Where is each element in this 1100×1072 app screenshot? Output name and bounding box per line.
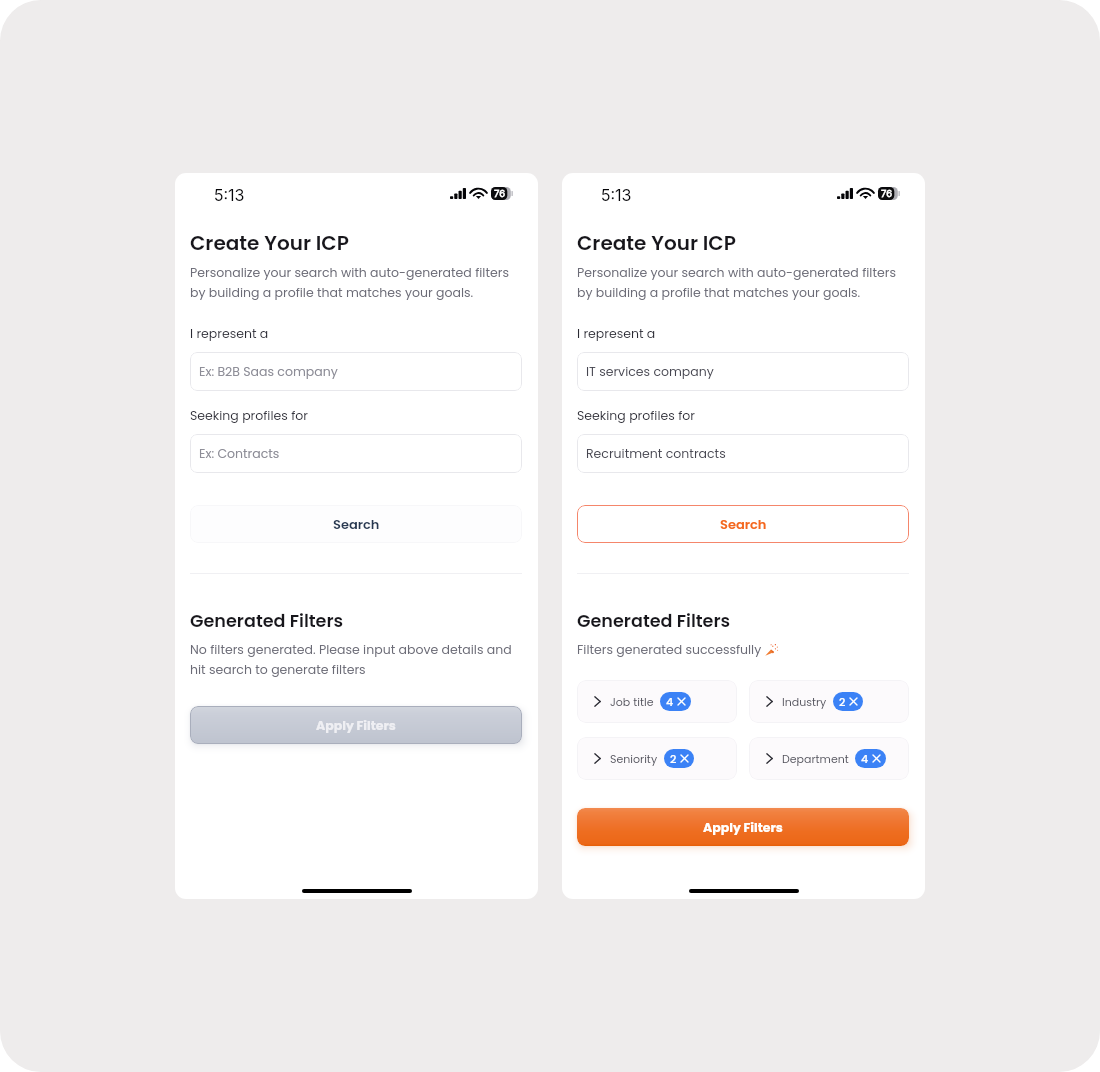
staticText: Industry (782, 694, 827, 709)
other: Clear Job title filter (678, 698, 685, 705)
staticText: Recruitment contracts (586, 445, 726, 462)
staticText: Generated Filters (577, 609, 731, 634)
button[interactable]: Apply Filters (190, 706, 522, 744)
button[interactable]: IT services company (577, 352, 909, 391)
staticText: Filters generated successfully (577, 641, 765, 658)
staticText: No filters generated. Please input above… (190, 641, 520, 678)
other: Clear Seniority filter (681, 755, 688, 762)
staticText: Seeking profiles for (577, 407, 695, 424)
staticText: Apply Filters (703, 819, 783, 836)
staticText: 4 (861, 751, 869, 766)
staticText: Department (782, 751, 849, 766)
staticText: Personalize your search with auto-genera… (577, 264, 902, 301)
button[interactable]: Search (577, 505, 909, 543)
button[interactable]: Seniority (577, 737, 737, 780)
staticText: 5:13 (214, 185, 245, 204)
staticText: Apply Filters (316, 717, 396, 734)
button[interactable]: Department (749, 737, 909, 780)
button[interactable]: Job title (577, 680, 737, 723)
staticText: Job title (610, 694, 654, 709)
staticText: 76 (494, 188, 506, 199)
button[interactable]: Apply Filters (577, 808, 909, 846)
other: Clear Industry filter (850, 698, 857, 705)
button[interactable]: Recruitment contracts (577, 434, 909, 473)
button[interactable]: Ex: Contracts (190, 434, 522, 473)
staticText: IT services company (586, 363, 714, 380)
staticText: 2 (839, 694, 846, 709)
button[interactable]: Search (190, 505, 522, 543)
staticText: Personalize your search with auto-genera… (190, 264, 515, 301)
staticText: Search (333, 515, 380, 533)
staticText: Generated Filters (190, 609, 344, 634)
button[interactable]: Ex: B2B Saas company (190, 352, 522, 391)
staticText: 2 (670, 751, 677, 766)
button[interactable]: Industry (749, 680, 909, 723)
staticText: I represent a (577, 325, 656, 342)
staticText: 4 (666, 694, 674, 709)
staticText: Seeking profiles for (190, 407, 308, 424)
staticText: Ex: Contracts (199, 445, 280, 462)
staticText: Create Your ICP (190, 229, 349, 257)
staticText: 76 (881, 188, 893, 199)
staticText: Seniority (610, 751, 658, 766)
staticText: Create Your ICP (577, 229, 736, 257)
staticText: Search (720, 515, 767, 533)
other: Clear Department filter (873, 755, 880, 762)
staticText: I represent a (190, 325, 269, 342)
staticText: Ex: B2B Saas company (199, 363, 338, 380)
staticText: 5:13 (601, 185, 632, 204)
other: Party popper (765, 644, 778, 656)
